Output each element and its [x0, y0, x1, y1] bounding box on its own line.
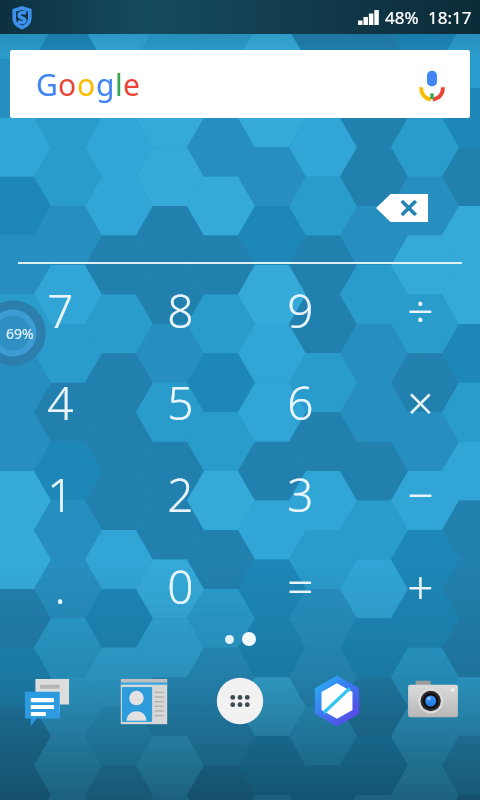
staticText: −	[407, 463, 434, 526]
button[interactable]: Battery 69 percent	[0, 300, 46, 366]
staticText: l	[115, 64, 123, 105]
button[interactable]: 9	[240, 264, 360, 356]
staticText: 4	[47, 371, 74, 434]
button[interactable]: 8	[120, 264, 240, 356]
staticText: 0	[167, 555, 194, 618]
staticText: 1	[47, 463, 74, 526]
staticText: 7	[47, 279, 74, 342]
button[interactable]: Messages	[14, 668, 80, 734]
staticText: 3	[287, 463, 314, 526]
button[interactable]: Backspace	[376, 194, 428, 222]
button[interactable]: Contacts	[111, 668, 177, 734]
button[interactable]: 3	[240, 448, 360, 540]
button[interactable]: −	[360, 448, 480, 540]
staticText: +	[407, 555, 434, 618]
staticText: ×	[407, 371, 434, 434]
staticText: 6	[287, 371, 314, 434]
staticText: G	[36, 64, 58, 105]
staticText: 9	[287, 279, 314, 342]
button[interactable]: 6	[240, 356, 360, 448]
staticText: 5	[167, 371, 194, 434]
staticText: ÷	[407, 279, 434, 342]
button[interactable]: .	[0, 540, 120, 632]
staticText: o	[58, 64, 77, 105]
button[interactable]: 1	[0, 448, 120, 540]
button[interactable]: Apps	[207, 668, 273, 734]
button[interactable]: 7	[0, 264, 120, 356]
button[interactable]: 5	[120, 356, 240, 448]
staticText: 8	[167, 279, 194, 342]
staticText: 48%	[385, 6, 419, 29]
staticText: .	[54, 555, 66, 618]
staticText: e	[123, 64, 140, 105]
staticText: 2	[167, 463, 194, 526]
staticText: 18:17	[428, 6, 472, 29]
button[interactable]: +	[360, 540, 480, 632]
staticText: =	[287, 555, 314, 618]
staticText: 69%	[6, 324, 34, 343]
button[interactable]: =	[240, 540, 360, 632]
button[interactable]: Browser	[304, 668, 370, 734]
staticText: o	[77, 64, 96, 105]
button[interactable]: Camera	[400, 668, 466, 734]
button[interactable]: ÷	[360, 264, 480, 356]
button[interactable]: ×	[360, 356, 480, 448]
button[interactable]: G	[10, 50, 470, 118]
button[interactable]: 2	[120, 448, 240, 540]
button[interactable]: Voice search	[414, 66, 450, 102]
button[interactable]: 0	[120, 540, 240, 632]
staticText: g	[96, 64, 115, 105]
button[interactable]: 4	[0, 356, 120, 448]
